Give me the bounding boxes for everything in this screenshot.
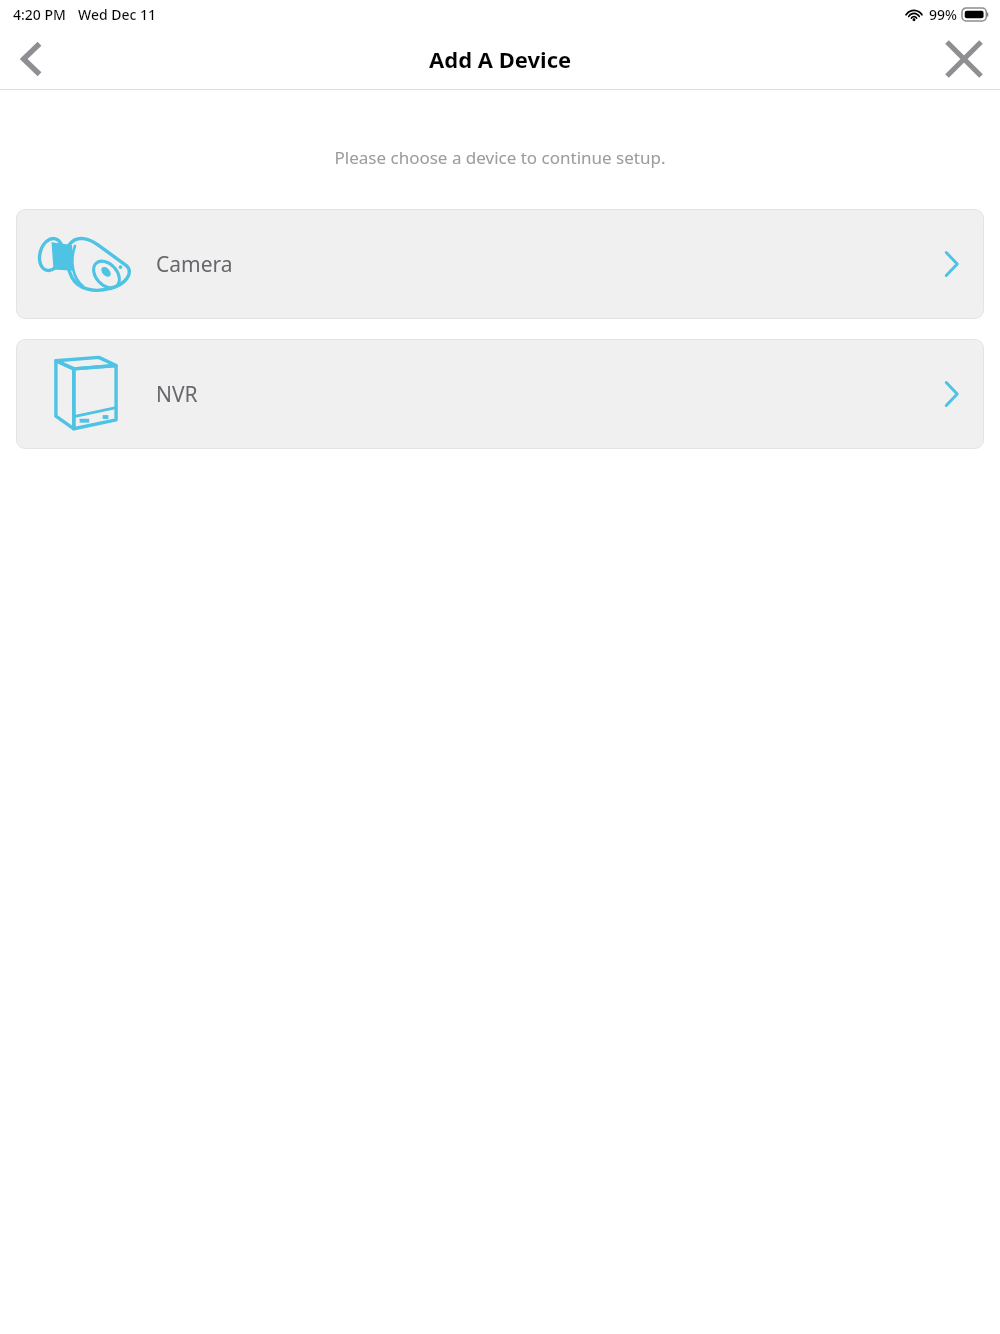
staticText: Add A Device [429, 44, 572, 74]
staticText: NVR [156, 380, 198, 409]
staticText: Wed Dec 11 [78, 5, 157, 24]
staticText: 99% [929, 5, 957, 24]
staticText: Camera [156, 250, 233, 279]
staticText: 4:20 PM [13, 5, 66, 24]
button[interactable]: Close [928, 29, 1000, 89]
button[interactable]: Back [0, 29, 64, 89]
button[interactable]: Camera [16, 209, 984, 319]
button[interactable]: NVR [16, 339, 984, 449]
staticText: Please choose a device to continue setup… [0, 146, 1000, 169]
